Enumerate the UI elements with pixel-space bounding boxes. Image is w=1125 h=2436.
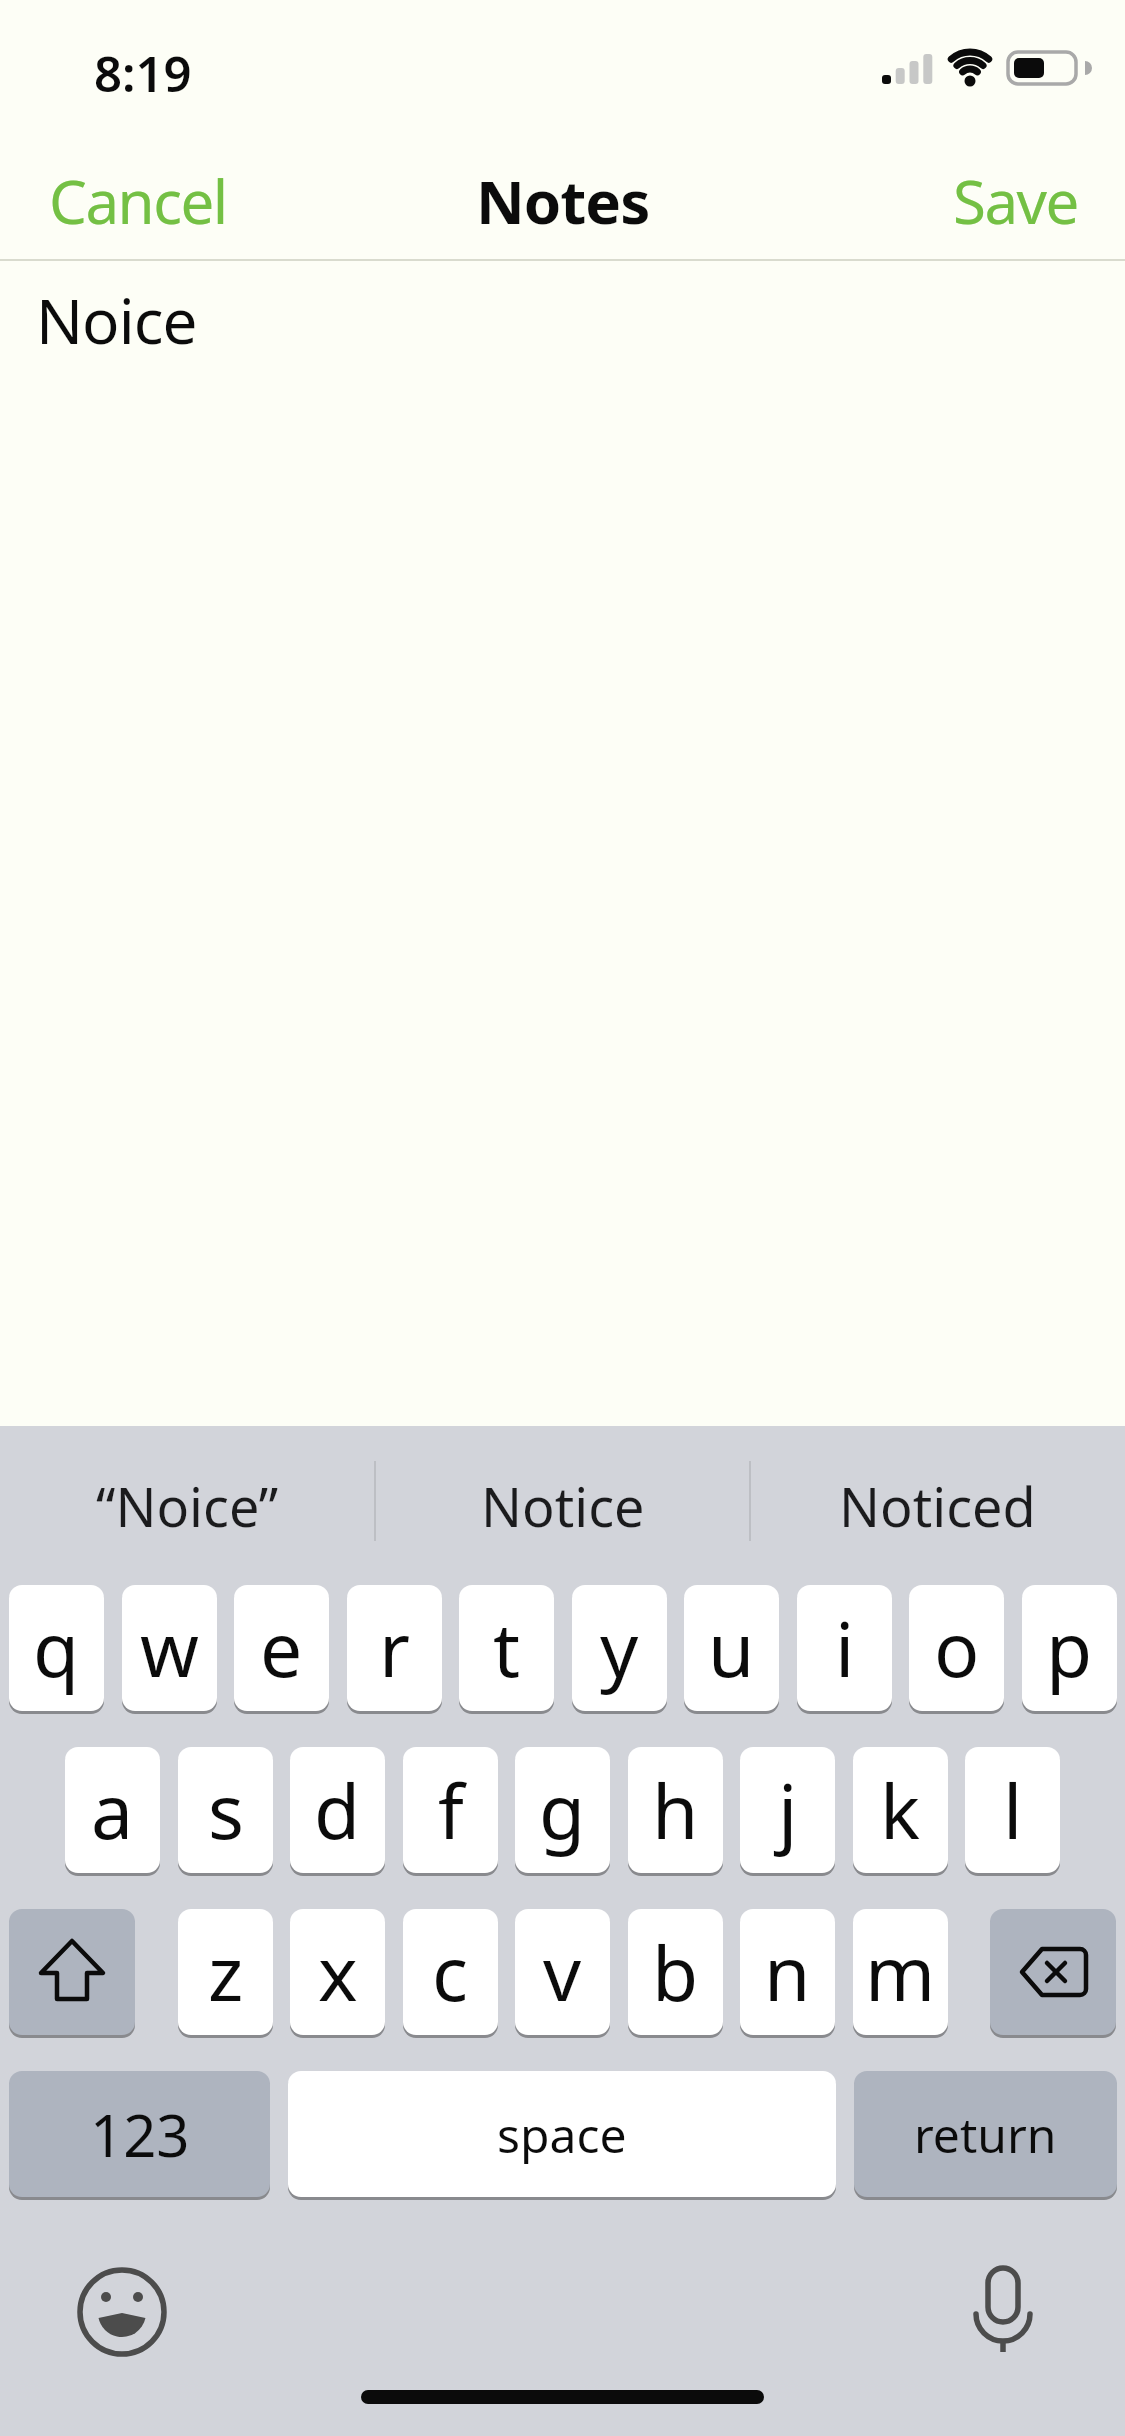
staticText: x <box>318 1921 358 2023</box>
button[interactable]: o <box>909 1585 1004 1711</box>
staticText: c <box>432 1921 469 2023</box>
staticText: j <box>778 1759 798 1861</box>
button[interactable]: a <box>65 1747 160 1873</box>
button[interactable]: u <box>684 1585 779 1711</box>
staticText: Cancel <box>49 160 227 242</box>
button[interactable]: k <box>853 1747 948 1873</box>
staticText: f <box>438 1759 464 1861</box>
button[interactable] <box>990 1909 1116 2035</box>
staticText: 8:19 <box>94 40 192 96</box>
button[interactable]: g <box>515 1747 610 1873</box>
button[interactable]: e <box>234 1585 329 1711</box>
button[interactable]: d <box>290 1747 385 1873</box>
button[interactable]: t <box>459 1585 554 1711</box>
button[interactable]: y <box>572 1585 667 1711</box>
staticText: d <box>314 1759 361 1861</box>
staticText: o <box>934 1597 980 1699</box>
staticText: y <box>600 1597 639 1699</box>
staticText: v <box>543 1921 582 2023</box>
button[interactable]: b <box>628 1909 723 2035</box>
button[interactable]: m <box>853 1909 948 2035</box>
staticText: Noticed <box>839 1469 1036 1543</box>
button[interactable] <box>9 1909 135 2035</box>
button[interactable]: i <box>797 1585 892 1711</box>
staticText: e <box>260 1597 303 1699</box>
staticText: g <box>539 1759 586 1861</box>
button[interactable]: l <box>965 1747 1060 1873</box>
staticText: w <box>140 1597 199 1699</box>
staticText: Notes <box>476 160 650 242</box>
button[interactable]: “Noice” <box>0 1426 375 1585</box>
button[interactable]: n <box>740 1909 835 2035</box>
staticText: l <box>1003 1759 1023 1861</box>
staticText: return <box>914 2102 1057 2167</box>
staticText: Save <box>953 160 1078 242</box>
button[interactable]: 123 <box>9 2071 270 2197</box>
staticText: s <box>208 1759 244 1861</box>
staticText: “Noice” <box>96 1469 279 1543</box>
staticText: t <box>493 1597 521 1699</box>
staticText: space <box>497 2102 627 2167</box>
button[interactable]: f <box>403 1747 498 1873</box>
staticText: m <box>865 1921 936 2023</box>
button[interactable]: z <box>178 1909 273 2035</box>
button[interactable]: Cancel <box>49 160 227 242</box>
button[interactable] <box>72 2262 172 2362</box>
staticText: Notice <box>481 1469 645 1543</box>
button[interactable] <box>953 2260 1053 2360</box>
button[interactable]: p <box>1022 1585 1117 1711</box>
staticText: a <box>91 1759 134 1861</box>
button[interactable]: v <box>515 1909 610 2035</box>
button[interactable]: return <box>854 2071 1117 2197</box>
button[interactable]: Save <box>953 160 1078 242</box>
button[interactable]: j <box>740 1747 835 1873</box>
button[interactable]: w <box>122 1585 217 1711</box>
button[interactable]: h <box>628 1747 723 1873</box>
button[interactable]: space <box>288 2071 836 2197</box>
button[interactable]: x <box>290 1909 385 2035</box>
staticText: Noice <box>36 278 197 362</box>
button[interactable]: s <box>178 1747 273 1873</box>
button[interactable]: Notice <box>375 1426 750 1585</box>
button[interactable]: c <box>403 1909 498 2035</box>
staticText: b <box>652 1921 699 2023</box>
staticText: k <box>880 1759 921 1861</box>
staticText: n <box>764 1921 811 2023</box>
staticText: p <box>1046 1597 1093 1699</box>
staticText: z <box>208 1921 244 2023</box>
staticText: 123 <box>90 2095 190 2174</box>
staticText: u <box>708 1597 755 1699</box>
staticText: q <box>33 1597 80 1699</box>
staticText: h <box>652 1759 699 1861</box>
button[interactable]: q <box>9 1585 104 1711</box>
button[interactable]: Noticed <box>750 1426 1125 1585</box>
button[interactable]: r <box>347 1585 442 1711</box>
staticText: i <box>835 1597 855 1699</box>
staticText: r <box>379 1597 410 1699</box>
